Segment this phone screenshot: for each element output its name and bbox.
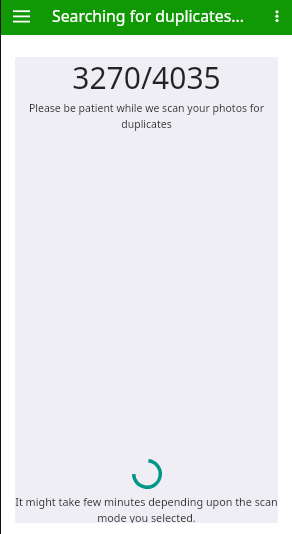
staticText: Please be patient while we scan your pho… [27,101,266,131]
other: Scanning in progress [132,459,162,489]
button[interactable]: Open navigation drawer [5,0,37,35]
staticText: Searching for duplicates... [52,5,244,27]
button[interactable]: More options [262,0,292,35]
staticText: 3270/4035 [15,57,278,98]
staticText: It might take few minutes depending upon… [15,494,278,523]
